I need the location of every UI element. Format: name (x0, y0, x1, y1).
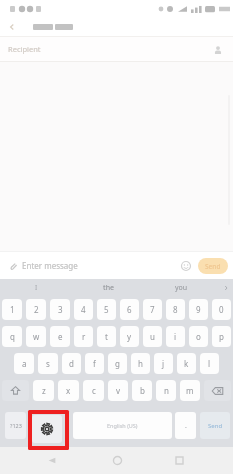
button[interactable]: n (156, 380, 176, 401)
button[interactable]: m (180, 380, 200, 401)
button[interactable]: Symbols (5, 412, 26, 439)
button[interactable]: 6 (120, 299, 139, 320)
button[interactable]: f (85, 353, 104, 374)
button[interactable]: c (83, 380, 104, 401)
staticText: e (58, 331, 63, 342)
button[interactable]: k (177, 353, 196, 374)
staticText: 9 (196, 304, 201, 315)
button[interactable]: Backspace (204, 380, 231, 401)
button[interactable]: o (189, 326, 208, 347)
button[interactable]: b (132, 380, 152, 401)
staticText: ?123 (10, 422, 22, 429)
staticText: 8 (173, 304, 178, 315)
staticText: o (196, 331, 201, 342)
staticText: g (115, 358, 120, 369)
button[interactable]: e (50, 326, 70, 347)
button[interactable]: Send (200, 412, 230, 439)
staticText: z (42, 385, 46, 396)
button[interactable]: More suggestions (218, 279, 233, 296)
button[interactable]: Add attachment (6, 259, 19, 272)
button[interactable]: h (131, 353, 150, 374)
button[interactable]: you (145, 279, 218, 296)
button[interactable]: g (108, 353, 127, 374)
staticText: f (93, 358, 96, 369)
button[interactable]: j (154, 353, 173, 374)
button[interactable]: Back (37, 447, 67, 474)
button[interactable]: 7 (143, 299, 162, 320)
button[interactable]: u (143, 326, 162, 347)
staticText: you (175, 283, 188, 293)
staticText: k (184, 358, 189, 369)
button[interactable]: Recipient (0, 37, 233, 61)
staticText: . (185, 421, 187, 431)
staticText: y (127, 331, 132, 342)
button[interactable]: x (58, 380, 79, 401)
staticText: l (208, 358, 211, 369)
staticText: 6 (127, 304, 132, 315)
staticText: Send (205, 262, 221, 271)
button[interactable]: Send (198, 258, 228, 274)
staticText: 4 (81, 304, 86, 315)
staticText: x (66, 385, 71, 396)
button[interactable]: w (26, 326, 46, 347)
staticText: h (138, 358, 143, 369)
button[interactable]: 1 (2, 299, 22, 320)
staticText: j (162, 358, 165, 369)
button[interactable]: 5 (97, 299, 116, 320)
button[interactable]: p (212, 326, 231, 347)
button[interactable]: 2 (26, 299, 46, 320)
staticText: i (174, 331, 177, 342)
button[interactable]: Keyboard settings (32, 415, 62, 443)
staticText: d (69, 358, 74, 369)
staticText: q (10, 331, 15, 342)
button[interactable]: y (120, 326, 139, 347)
button[interactable]: s (38, 353, 58, 374)
staticText: 7 (150, 304, 155, 315)
button[interactable]: t (97, 326, 116, 347)
button[interactable]: 3 (50, 299, 70, 320)
staticText: u (150, 331, 155, 342)
button[interactable]: 9 (189, 299, 208, 320)
button[interactable]: Home (102, 447, 132, 474)
staticText: 0 (219, 304, 224, 315)
staticText: Recipient (8, 44, 41, 54)
staticText: m (186, 385, 194, 396)
staticText: 1 (10, 304, 15, 315)
staticText: n (164, 385, 169, 396)
staticText: p (219, 331, 224, 342)
button[interactable]: q (2, 326, 22, 347)
staticText: b (140, 385, 145, 396)
staticText: 3 (58, 304, 63, 315)
button[interactable]: v (108, 380, 128, 401)
button[interactable]: Period (175, 412, 196, 439)
staticText: 5 (104, 304, 109, 315)
button[interactable]: English (US) (73, 412, 172, 439)
button[interactable]: z (33, 380, 54, 401)
button[interactable]: the (72, 279, 145, 296)
staticText: I (35, 283, 38, 292)
staticText: r (82, 331, 86, 342)
button[interactable]: Shift (2, 380, 29, 401)
staticText: c (92, 385, 96, 396)
staticText: 2 (34, 304, 39, 315)
staticText: the (103, 283, 115, 293)
button[interactable]: Recent apps (164, 447, 194, 474)
staticText: Enter message (22, 260, 78, 271)
staticText: Send (208, 422, 223, 430)
button[interactable]: l (200, 353, 219, 374)
button[interactable]: 0 (212, 299, 231, 320)
staticText: a (22, 358, 27, 369)
staticText: English (US) (107, 422, 138, 429)
button[interactable]: r (74, 326, 93, 347)
button[interactable]: 8 (166, 299, 185, 320)
staticText: v (116, 385, 121, 396)
staticText: w (33, 331, 40, 342)
button[interactable]: 4 (74, 299, 93, 320)
button[interactable]: d (62, 353, 81, 374)
button[interactable]: Choose contact (210, 42, 225, 57)
button[interactable]: i (166, 326, 185, 347)
button[interactable]: Insert emoji (179, 259, 193, 273)
button[interactable]: a (14, 353, 34, 374)
button[interactable]: Navigate up (4, 19, 20, 35)
